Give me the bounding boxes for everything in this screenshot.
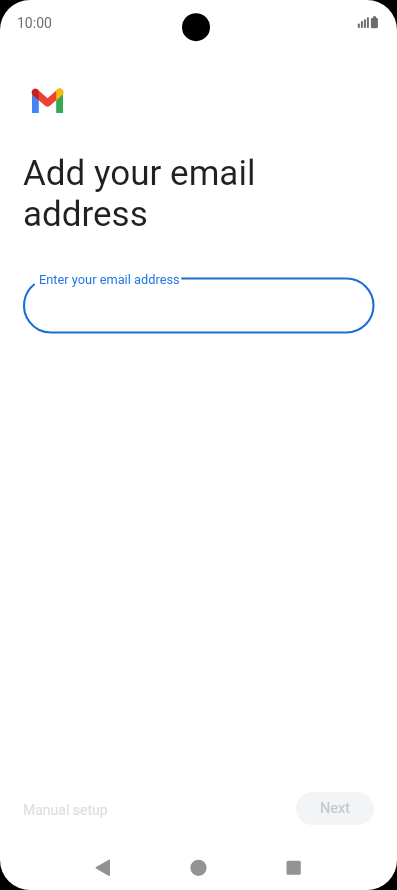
button[interactable]: Enter your email address <box>24 279 374 333</box>
staticText: Enter your email address <box>39 272 180 287</box>
staticText: Add your email address <box>23 153 256 235</box>
staticText: Next <box>320 800 350 817</box>
staticText: 10:00 <box>17 15 52 31</box>
button[interactable]: Home <box>168 843 230 890</box>
button[interactable]: Manual setup <box>15 796 116 824</box>
button[interactable]: Back <box>72 843 134 890</box>
button[interactable]: Next <box>296 792 374 825</box>
staticText: Manual setup <box>23 802 108 818</box>
button[interactable]: Recent apps <box>263 843 325 890</box>
